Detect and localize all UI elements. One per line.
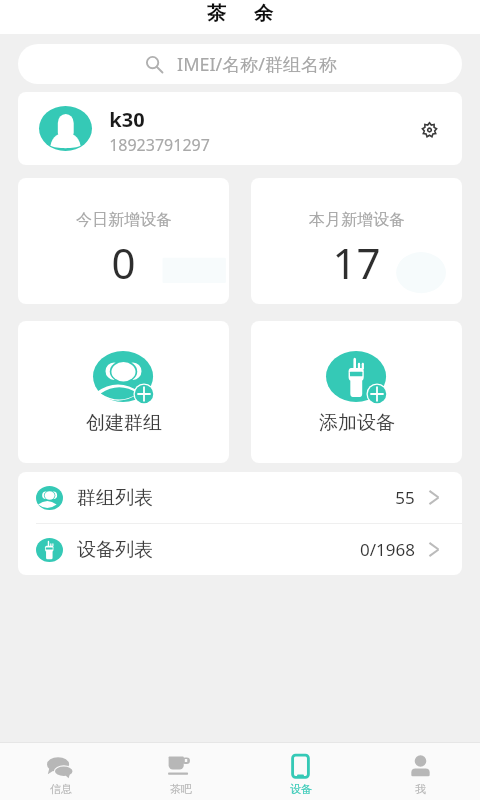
staticText: 群组列表 bbox=[77, 486, 153, 510]
staticText: 信息 bbox=[50, 782, 72, 796]
button[interactable]: IMEI/名称/群组名称 bbox=[18, 44, 462, 84]
staticText: 设备列表 bbox=[77, 538, 153, 562]
staticText: 添加设备 bbox=[319, 411, 395, 435]
button[interactable]: 设备 bbox=[240, 743, 360, 800]
button[interactable]: 设备列表 bbox=[18, 524, 462, 575]
staticText: k30 bbox=[109, 106, 145, 133]
staticText: 0/1968 bbox=[360, 538, 415, 561]
button[interactable]: 群组列表 bbox=[18, 472, 462, 523]
staticText: 本月新增设备 bbox=[309, 210, 405, 230]
staticText: IMEI/名称/群组名称 bbox=[177, 52, 337, 77]
staticText: 55 bbox=[395, 486, 415, 509]
staticText: 17 bbox=[332, 234, 381, 291]
staticText: 设备 bbox=[290, 782, 312, 796]
button[interactable]: 添加设备 bbox=[251, 321, 462, 463]
staticText: 18923791297 bbox=[109, 134, 210, 156]
button[interactable]: 信息 bbox=[0, 743, 120, 800]
staticText: 0 bbox=[111, 234, 136, 291]
staticText: 茶 bbox=[207, 2, 226, 26]
staticText: 今日新增设备 bbox=[76, 210, 172, 230]
button[interactable]: 创建群组 bbox=[18, 321, 229, 463]
button[interactable]: 茶吧 bbox=[120, 743, 240, 800]
button[interactable]: 本月新增设备 bbox=[251, 178, 462, 304]
staticText: 茶吧 bbox=[170, 782, 192, 796]
button[interactable]: k30 bbox=[18, 92, 462, 165]
staticText: 创建群组 bbox=[86, 411, 162, 435]
staticText: 余 bbox=[254, 2, 273, 26]
staticText: 我 bbox=[415, 782, 426, 796]
button[interactable]: Settings bbox=[414, 114, 444, 144]
button[interactable]: 我 bbox=[360, 743, 480, 800]
button[interactable]: 今日新增设备 bbox=[18, 178, 229, 304]
